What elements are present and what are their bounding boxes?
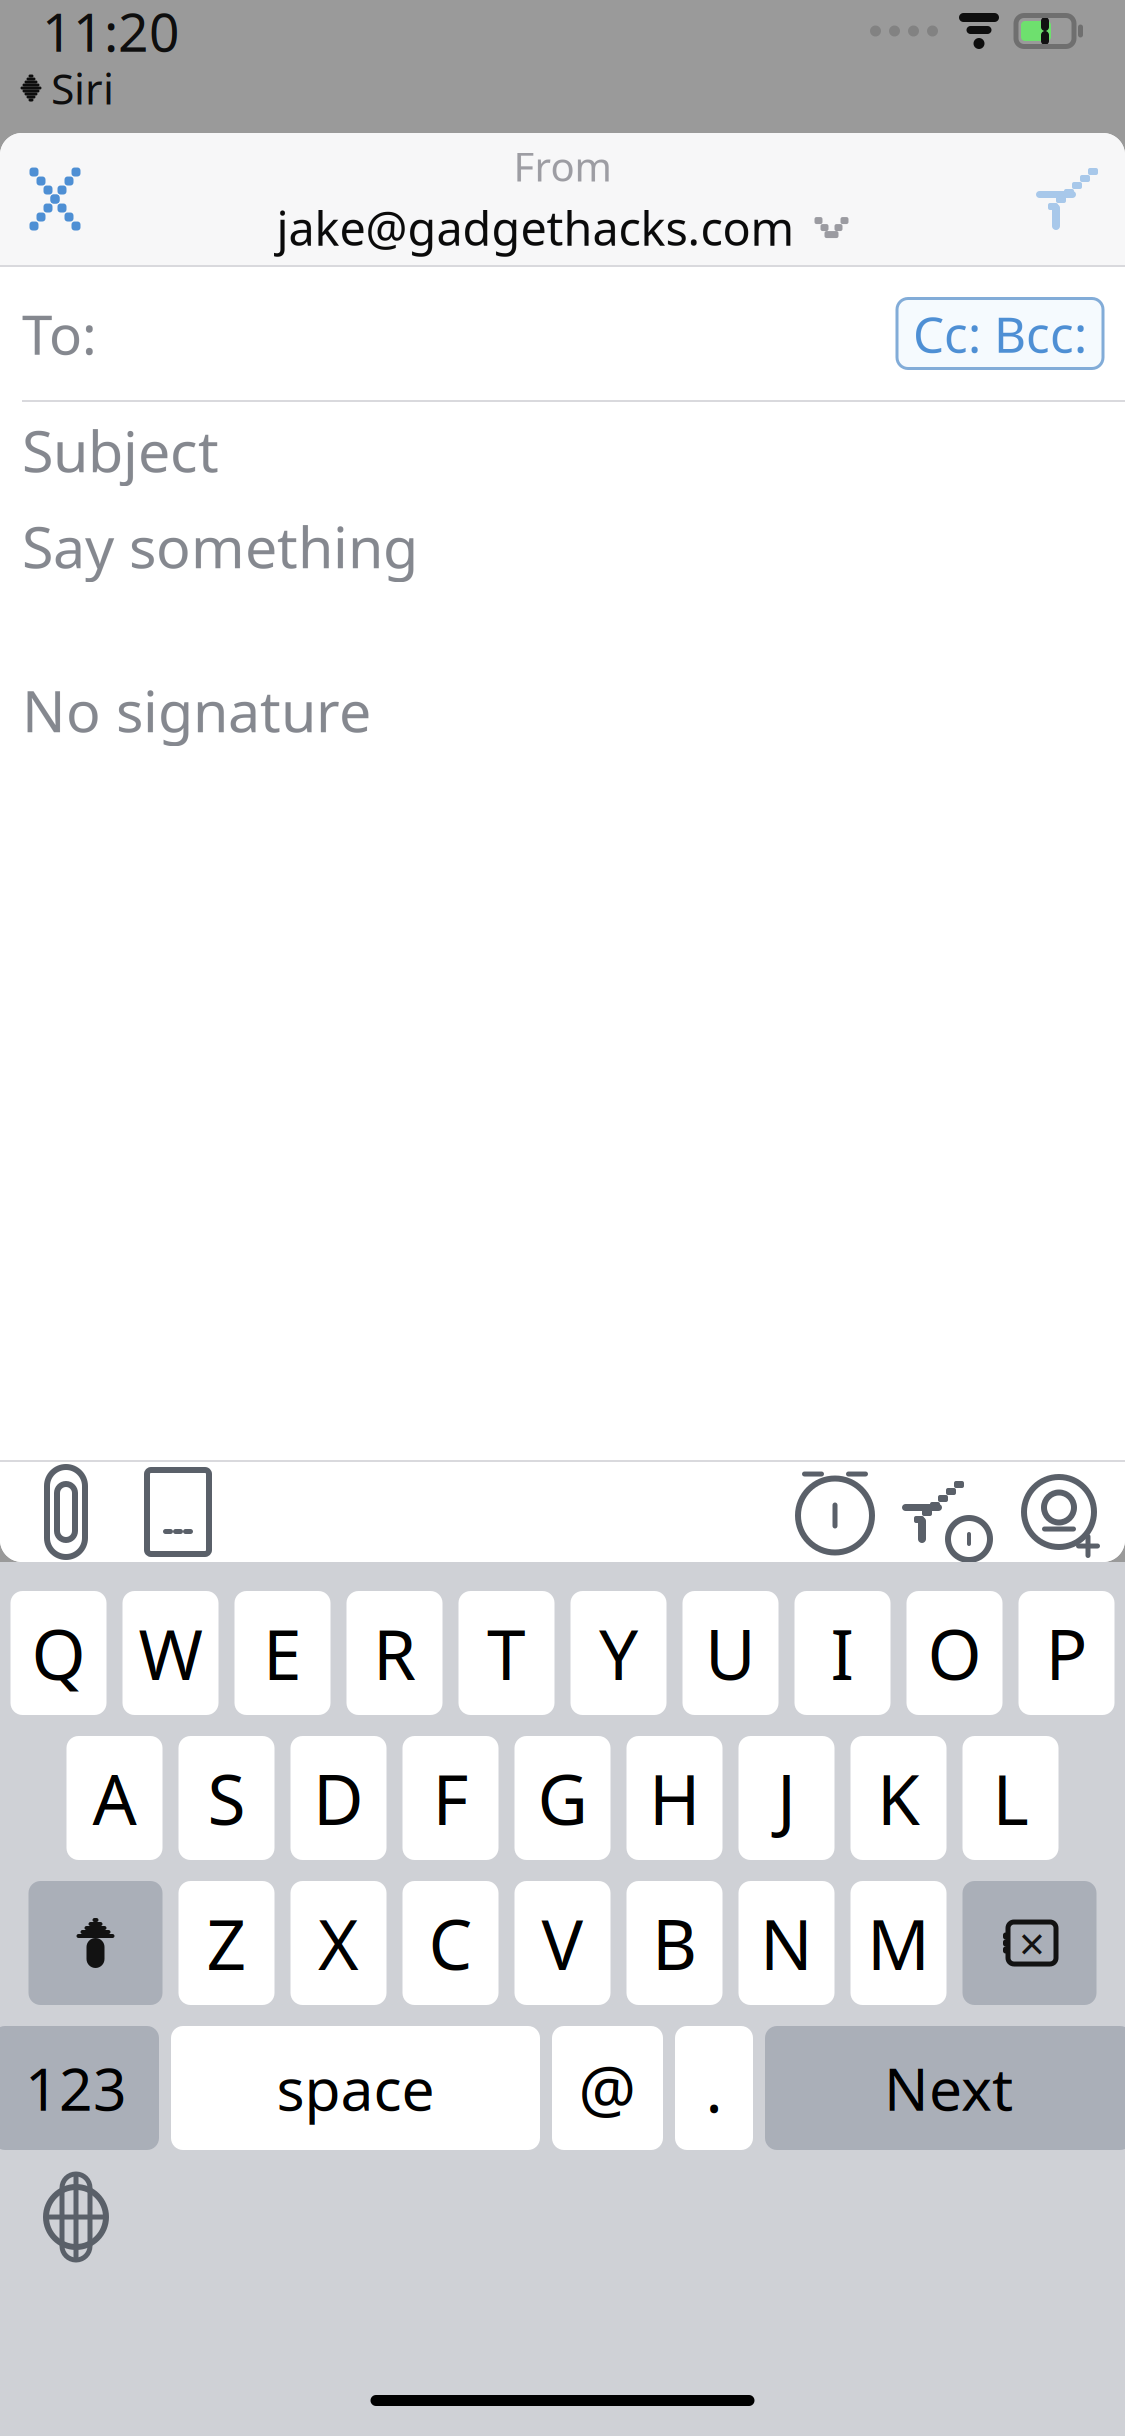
staticText: Cc: Bcc: xyxy=(913,301,1087,366)
button[interactable]: V xyxy=(514,1881,610,2005)
staticText: H xyxy=(649,1752,700,1844)
staticText: @ xyxy=(578,2045,636,2130)
button[interactable]: O xyxy=(906,1591,1002,1715)
button[interactable]: C xyxy=(402,1881,498,2005)
staticText: From xyxy=(513,139,611,193)
button[interactable]: U xyxy=(682,1591,778,1715)
staticText: L xyxy=(992,1752,1028,1844)
staticText: M xyxy=(867,1897,930,1989)
staticText: S xyxy=(207,1752,245,1844)
button[interactable]: space xyxy=(171,2026,540,2150)
staticText: V xyxy=(541,1897,583,1989)
staticText: 123 xyxy=(25,2049,127,2127)
staticText: J xyxy=(777,1752,796,1844)
staticText: Siri xyxy=(51,60,114,116)
button[interactable]: Insert photo xyxy=(122,1462,234,1562)
button[interactable]: D xyxy=(290,1736,386,1860)
button[interactable]: Send xyxy=(1009,133,1125,265)
staticText: F xyxy=(432,1752,468,1844)
button[interactable]: G xyxy=(514,1736,610,1860)
button[interactable]: A xyxy=(66,1736,162,1860)
button[interactable]: Remind me xyxy=(779,1462,891,1562)
button[interactable]: Next keyboard xyxy=(16,2162,136,2272)
button[interactable]: M xyxy=(850,1881,946,2005)
button[interactable]: J xyxy=(738,1736,834,1860)
staticText: Next xyxy=(884,2049,1013,2127)
staticText: T xyxy=(487,1607,526,1699)
staticText: U xyxy=(705,1607,756,1699)
staticText: O xyxy=(927,1607,981,1699)
button[interactable]: Add recipient xyxy=(1003,1462,1115,1562)
button[interactable]: E xyxy=(234,1591,330,1715)
staticText: E xyxy=(263,1607,302,1699)
staticText: G xyxy=(537,1752,587,1844)
button[interactable]: K xyxy=(850,1736,946,1860)
staticText: 11:20 xyxy=(42,0,180,66)
button[interactable]: P xyxy=(1018,1591,1114,1715)
button[interactable]: Z xyxy=(178,1881,274,2005)
button[interactable]: Cancel xyxy=(0,133,110,265)
button[interactable]: Cc: Bcc: xyxy=(897,298,1103,368)
button[interactable]: H xyxy=(626,1736,722,1860)
button[interactable]: S xyxy=(178,1736,274,1860)
staticText: space xyxy=(276,2049,434,2127)
staticText: Subject xyxy=(22,412,219,488)
staticText: To: xyxy=(22,297,97,370)
button[interactable]: R xyxy=(346,1591,442,1715)
button[interactable]: 123 xyxy=(0,2026,159,2150)
staticText: K xyxy=(877,1752,920,1844)
staticText: . xyxy=(705,2045,722,2130)
button[interactable]: Shift xyxy=(28,1881,162,2005)
button[interactable]: @ xyxy=(552,2026,663,2150)
button[interactable]: F xyxy=(402,1736,498,1860)
staticText: W xyxy=(138,1607,202,1699)
staticText: I xyxy=(830,1607,854,1699)
staticText: X xyxy=(318,1897,359,1989)
button[interactable]: N xyxy=(738,1881,834,2005)
button[interactable]: T xyxy=(458,1591,554,1715)
staticText: No signature xyxy=(22,672,371,748)
staticText: jake@gadgethacks.com xyxy=(276,197,794,259)
staticText: P xyxy=(1045,1607,1087,1699)
button[interactable]: Delete xyxy=(962,1881,1096,2005)
button[interactable]: X xyxy=(290,1881,386,2005)
staticText: Y xyxy=(599,1607,638,1699)
button[interactable]: Y xyxy=(570,1591,666,1715)
button[interactable]: Attach file xyxy=(10,1462,122,1562)
staticText: C xyxy=(428,1897,472,1989)
button[interactable]: . xyxy=(675,2026,753,2150)
button[interactable]: Next xyxy=(765,2026,1125,2150)
button[interactable]: I xyxy=(794,1591,890,1715)
staticText: N xyxy=(760,1897,813,1989)
button[interactable]: Q xyxy=(10,1591,106,1715)
button[interactable]: B xyxy=(626,1881,722,2005)
button[interactable]: Send later xyxy=(891,1462,1003,1562)
staticText: Say something xyxy=(22,508,418,584)
staticText: B xyxy=(652,1897,697,1989)
staticText: A xyxy=(92,1752,136,1844)
staticText: R xyxy=(373,1607,416,1699)
button[interactable]: L xyxy=(962,1736,1058,1860)
staticText: D xyxy=(313,1752,364,1844)
staticText: × xyxy=(1019,1913,1045,1973)
staticText: Z xyxy=(206,1897,246,1989)
staticText: Q xyxy=(31,1607,85,1699)
button[interactable]: W xyxy=(122,1591,218,1715)
